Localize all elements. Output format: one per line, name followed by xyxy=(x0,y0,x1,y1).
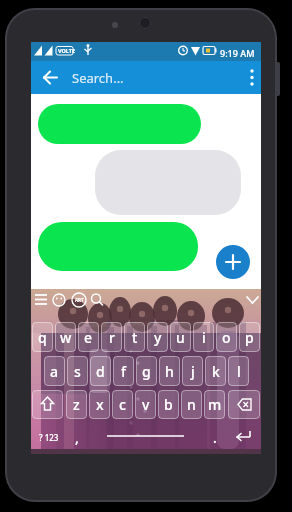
staticText: e xyxy=(84,328,93,347)
staticText: 9:19 AM xyxy=(220,47,255,59)
staticText: q xyxy=(38,328,47,347)
staticText: f xyxy=(121,362,126,381)
staticText: ? 123 xyxy=(39,432,59,443)
staticText: l xyxy=(237,362,241,381)
button[interactable]: a xyxy=(44,356,65,386)
staticText: j xyxy=(191,362,195,381)
staticText: u xyxy=(176,328,185,347)
button[interactable]: m xyxy=(204,390,225,419)
staticText: c xyxy=(119,395,126,414)
button[interactable]: v xyxy=(135,390,156,419)
staticText: k xyxy=(212,362,220,381)
button[interactable]: l xyxy=(228,356,249,386)
button[interactable] xyxy=(216,245,250,279)
button[interactable]: w xyxy=(55,322,76,352)
button[interactable]: , xyxy=(67,424,87,450)
button[interactable]: o xyxy=(216,322,237,352)
button[interactable]: g xyxy=(136,356,157,386)
button[interactable]: u xyxy=(170,322,191,352)
button[interactable] xyxy=(38,222,198,271)
staticText: m xyxy=(208,395,222,414)
button[interactable] xyxy=(31,61,261,94)
staticText: b xyxy=(164,395,173,414)
button[interactable]: c xyxy=(112,390,133,419)
staticText: t xyxy=(132,328,138,347)
button[interactable]: . xyxy=(204,424,225,450)
button[interactable] xyxy=(227,424,260,450)
staticText: y xyxy=(154,328,162,347)
staticText: VOLTE xyxy=(58,47,76,54)
staticText: o xyxy=(222,328,231,347)
button[interactable] xyxy=(32,390,63,419)
button[interactable]: e xyxy=(78,322,99,352)
staticText: w xyxy=(60,328,72,347)
staticText: x xyxy=(96,395,104,414)
button[interactable]: k xyxy=(205,356,226,386)
staticText: p xyxy=(245,328,254,347)
button[interactable]: r xyxy=(101,322,122,352)
staticText: r xyxy=(109,328,115,347)
button[interactable]: h xyxy=(159,356,180,386)
staticText: h xyxy=(165,362,174,381)
staticText: a xyxy=(50,362,59,381)
staticText: n xyxy=(187,395,196,414)
button[interactable]: f xyxy=(113,356,134,386)
staticText: v xyxy=(142,395,150,414)
button[interactable]: t xyxy=(124,322,145,352)
staticText: i xyxy=(202,328,206,347)
button[interactable]: n xyxy=(181,390,202,419)
staticText: Search... xyxy=(72,69,124,87)
staticText: s xyxy=(74,362,81,381)
staticText: d xyxy=(96,362,105,381)
button[interactable]: ? 123 xyxy=(32,424,65,450)
staticText: ART xyxy=(75,297,84,303)
button[interactable]: i xyxy=(193,322,214,352)
button[interactable]: p xyxy=(239,322,260,352)
button[interactable] xyxy=(95,150,241,215)
staticText: . xyxy=(213,428,217,447)
staticText: z xyxy=(73,395,80,414)
button[interactable] xyxy=(89,424,202,450)
button[interactable] xyxy=(38,104,201,144)
button[interactable]: x xyxy=(89,390,110,419)
button[interactable]: y xyxy=(147,322,168,352)
button[interactable]: q xyxy=(32,322,53,352)
button[interactable]: j xyxy=(182,356,203,386)
staticText: g xyxy=(142,362,151,381)
button[interactable]: d xyxy=(90,356,111,386)
button[interactable]: b xyxy=(158,390,179,419)
button[interactable] xyxy=(228,390,260,419)
button[interactable]: z xyxy=(66,390,87,419)
staticText: , xyxy=(75,428,79,447)
button[interactable]: s xyxy=(67,356,88,386)
